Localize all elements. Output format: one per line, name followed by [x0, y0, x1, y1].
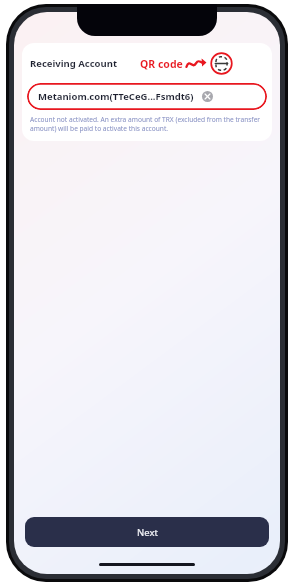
button[interactable]: Next [25, 517, 269, 547]
button[interactable]: Scan QR code [210, 52, 233, 75]
button[interactable]: Metaniom.com(TTeCeG...Fsmdt6) [27, 83, 267, 110]
staticText: Metaniom.com(TTeCeG...Fsmdt6) [38, 90, 194, 103]
staticText: Account not activated. An extra amount o… [30, 115, 264, 133]
staticText: Next [137, 526, 158, 539]
staticText: QR code [140, 57, 183, 71]
button[interactable]: Clear [202, 91, 213, 102]
staticText: Receiving Account [30, 57, 118, 70]
